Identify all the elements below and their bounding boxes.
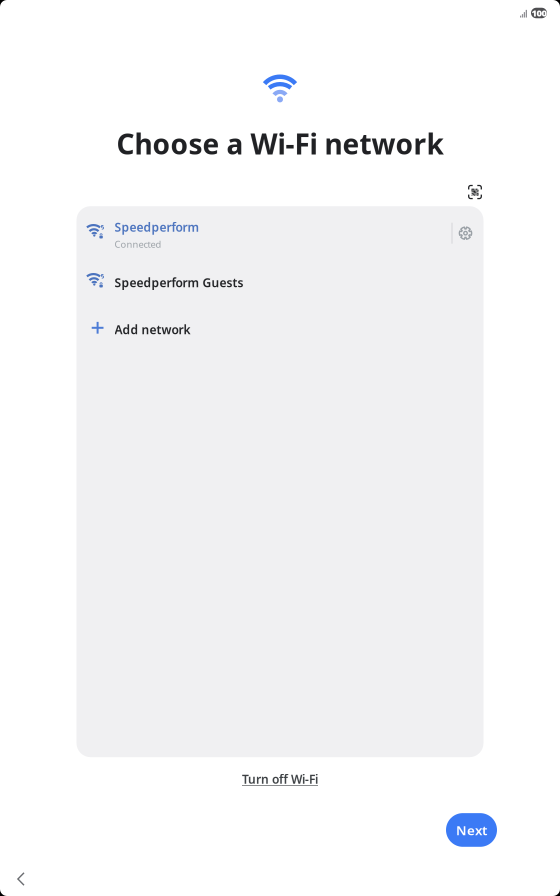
staticText: 100 [531,7,546,19]
staticText: Speedperform Guests [114,275,243,291]
staticText: Choose a Wi-Fi network [116,125,443,162]
staticText: Next [456,821,487,839]
button[interactable]: Add network [76,306,483,353]
button[interactable]: Scan QR code [463,180,487,204]
staticText: Turn off Wi-Fi [242,771,318,787]
button[interactable]: Turn off Wi-Fi [232,765,328,793]
button[interactable]: Speedperform Guests [76,259,483,306]
staticText: Speedperform [114,219,199,235]
button[interactable]: Back [8,863,35,896]
staticText: Connected [114,238,161,250]
staticText: Add network [114,322,190,338]
button[interactable]: Next [446,813,497,847]
button[interactable]: Speedperform [76,210,483,259]
